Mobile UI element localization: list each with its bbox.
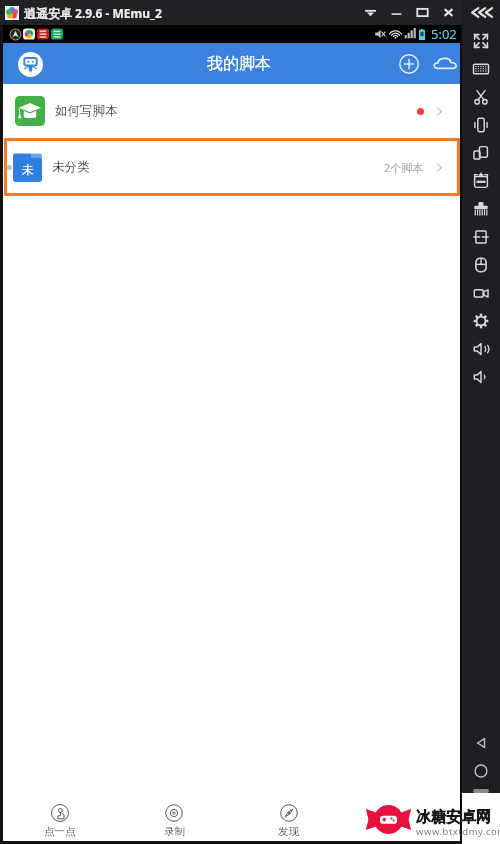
button[interactable]: Close <box>435 0 461 25</box>
button[interactable]: Add <box>392 47 425 80</box>
staticText: 5:02 <box>431 25 457 43</box>
button[interactable]: Transfer <box>462 223 500 251</box>
button[interactable]: Clean <box>462 195 500 223</box>
staticText: 冰糖安卓网 <box>416 808 491 827</box>
button[interactable]: Location <box>462 251 500 279</box>
button[interactable]: Volume up <box>462 335 500 363</box>
button[interactable]: 录制 <box>117 801 231 841</box>
staticText: 逍遥安卓 2.9.6 - MEmu_2 <box>24 5 162 21</box>
button[interactable]: Record <box>462 279 500 307</box>
button[interactable]: Home <box>462 757 500 785</box>
button[interactable]: Keyboard <box>462 55 500 83</box>
staticText: 未分类 <box>52 159 90 175</box>
staticText: 发现 <box>278 825 299 838</box>
button[interactable]: Volume down <box>462 363 500 391</box>
staticText: 2个脚本 <box>384 160 424 175</box>
button[interactable]: 点一点 <box>3 801 117 841</box>
button[interactable]: Shake <box>462 111 500 139</box>
staticText: 如何写脚本 <box>55 103 118 119</box>
button[interactable]: Install APK <box>462 167 500 195</box>
button[interactable]: Fullscreen <box>462 27 500 55</box>
button[interactable]: Cloud backup <box>429 47 462 80</box>
staticText: www.btxtdmy.com <box>416 825 500 838</box>
button[interactable]: 未 <box>4 138 460 196</box>
button[interactable]: Cut <box>462 83 500 111</box>
button[interactable]: Minimize <box>383 0 409 25</box>
button[interactable]: Settings <box>462 307 500 335</box>
button[interactable]: Hide toolbar <box>466 0 496 25</box>
button[interactable]: Back <box>462 729 500 757</box>
button[interactable]: Multi window <box>462 139 500 167</box>
staticText: 我的脚本 <box>207 54 271 74</box>
button[interactable]: Collapse <box>357 0 383 25</box>
button[interactable]: 如何写脚本 <box>3 84 461 138</box>
staticText: 录制 <box>164 825 185 838</box>
button[interactable]: Maximize <box>409 0 435 25</box>
button[interactable]: Profile <box>14 48 46 80</box>
staticText: 未 <box>22 162 34 177</box>
button[interactable]: 发现 <box>231 801 346 841</box>
staticText: 点一点 <box>44 825 76 838</box>
